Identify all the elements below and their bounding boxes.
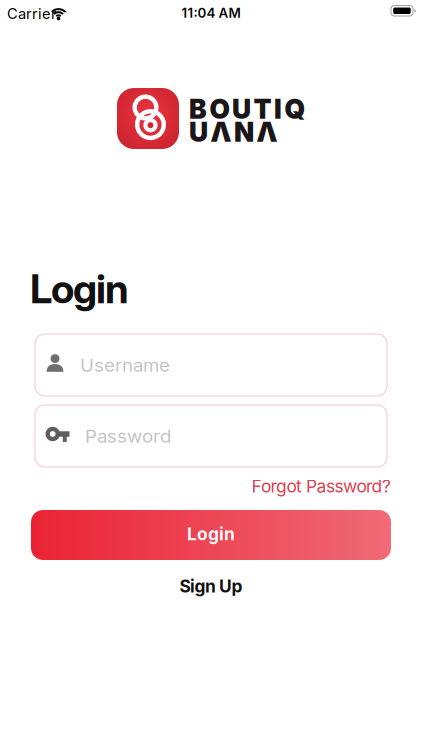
staticText: 11:04 AM (181, 5, 240, 21)
staticText: Login (187, 524, 235, 544)
staticText: Username (80, 354, 170, 376)
button[interactable]: Username (35, 334, 387, 396)
staticText: Sign Up (179, 576, 242, 596)
staticText: Carrier (7, 5, 57, 22)
staticText: Login (30, 265, 129, 312)
staticText: Forgot Password? (251, 476, 391, 496)
button[interactable]: Forgot Password? (251, 476, 391, 496)
button[interactable]: Login (31, 510, 391, 560)
staticText: Password (85, 425, 171, 447)
button[interactable]: Password (35, 405, 387, 467)
staticText: UΛNΛ (189, 116, 277, 148)
button[interactable]: Sign Up (179, 576, 242, 596)
staticText: BOUTIQ (189, 93, 305, 125)
